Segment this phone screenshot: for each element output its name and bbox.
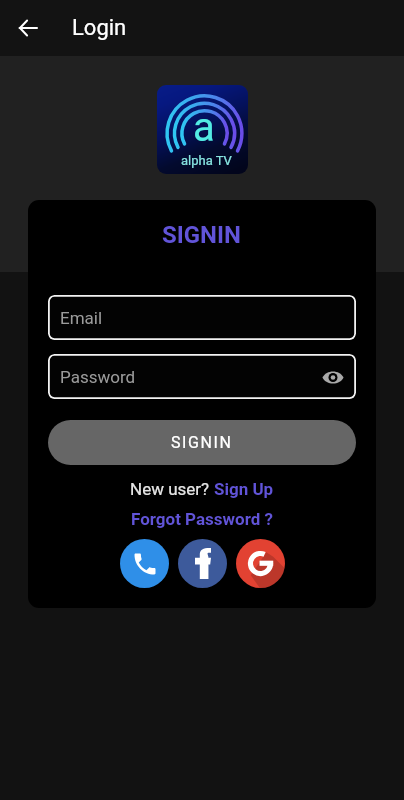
button[interactable]: Forgot Password ? <box>131 509 274 529</box>
staticText: a <box>193 104 215 151</box>
staticText: Password <box>60 367 136 387</box>
button[interactable]: Sign in with Google <box>236 539 285 588</box>
staticText: SIGNIN <box>162 221 242 249</box>
button[interactable]: SIGNIN <box>48 420 356 465</box>
staticText: alpha TV <box>181 153 232 168</box>
staticText: Login <box>72 15 127 41</box>
staticText: New user? <box>130 479 214 499</box>
staticText: SIGNIN <box>171 433 233 452</box>
button[interactable]: Back <box>8 8 48 48</box>
button[interactable]: Sign Up <box>214 479 274 499</box>
button[interactable]: Email <box>48 295 356 340</box>
button[interactable]: Show password <box>320 364 346 390</box>
button[interactable]: Password <box>48 354 356 399</box>
button[interactable]: Sign in with phone <box>120 539 169 588</box>
staticText: Forgot Password ? <box>131 509 274 529</box>
staticText: Sign Up <box>214 479 274 499</box>
button[interactable]: Sign in with Facebook <box>178 539 227 588</box>
staticText: Email <box>60 308 103 328</box>
